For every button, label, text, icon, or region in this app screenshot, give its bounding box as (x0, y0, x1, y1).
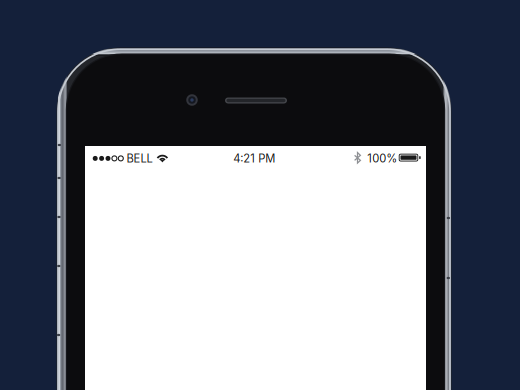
staticText: 100% (367, 152, 397, 165)
staticText: BELL (127, 152, 153, 165)
staticText: 4:21 PM (233, 152, 275, 165)
